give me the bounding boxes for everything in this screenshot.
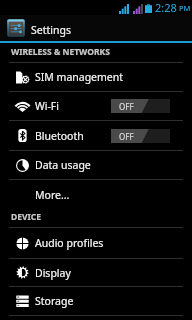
staticText: DEVICE (11, 211, 42, 223)
button[interactable]: Display (0, 259, 192, 286)
staticText: Audio profiles (35, 236, 104, 250)
button[interactable]: Toggle off (111, 99, 170, 113)
staticText: Bluetooth (35, 129, 84, 143)
staticText: OFF (119, 101, 134, 112)
staticText: SIM management (35, 70, 124, 84)
staticText: Settings (31, 23, 71, 37)
button[interactable]: SIM management (0, 63, 192, 91)
staticText: OFF (119, 131, 134, 142)
button[interactable]: More... (0, 180, 192, 210)
staticText: WIRELESS & NETWORKS (11, 46, 110, 58)
staticText: Wi-Fi (35, 99, 60, 113)
button[interactable]: Bluetooth (0, 121, 192, 150)
staticText: 2:28 (155, 0, 177, 14)
staticText: More... (35, 188, 70, 202)
button[interactable]: Toggle off (111, 129, 170, 143)
staticText: PM (179, 3, 191, 13)
button[interactable]: Storage (0, 287, 192, 315)
staticText: Storage (35, 294, 74, 308)
button[interactable]: Settings (0, 15, 192, 41)
button[interactable]: Data usage (0, 151, 192, 179)
staticText: Data usage (35, 158, 91, 172)
button[interactable]: Audio profiles (0, 228, 192, 258)
button[interactable]: Wi-Fi (0, 92, 192, 120)
staticText: Display (35, 266, 71, 280)
